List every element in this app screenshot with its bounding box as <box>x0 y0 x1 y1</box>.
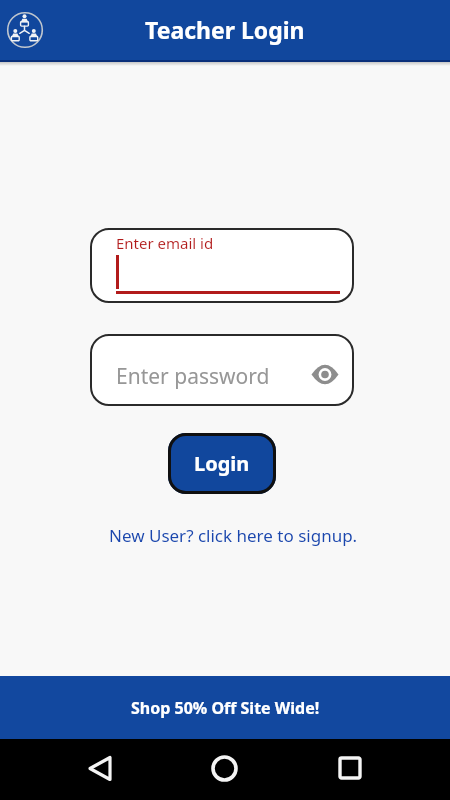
button[interactable] <box>333 751 367 785</box>
button[interactable]: New User? click here to signup. <box>109 524 358 547</box>
staticText: Enter email id <box>116 233 214 253</box>
button[interactable]: Login <box>168 433 276 494</box>
button[interactable] <box>311 364 339 385</box>
staticText: Shop 50% Off Site Wide! <box>131 697 320 719</box>
button[interactable] <box>207 751 242 786</box>
button[interactable]: Shop 50% Off Site Wide! <box>0 676 450 739</box>
button[interactable] <box>84 751 118 785</box>
button[interactable]: Enter password <box>90 334 354 406</box>
staticText: Enter password <box>116 362 270 391</box>
staticText: Login <box>194 450 250 477</box>
button[interactable] <box>4 8 48 52</box>
button[interactable]: Enter email id <box>90 228 354 303</box>
staticText: Teacher Login <box>145 14 305 45</box>
